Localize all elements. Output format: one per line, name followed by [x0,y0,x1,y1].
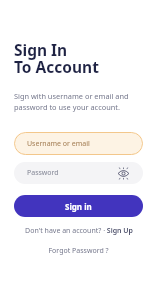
staticText: Sign in [65,201,92,212]
button[interactable]: Password [14,162,143,184]
staticText: Username or email [27,139,90,149]
button[interactable]: Username or email [14,132,143,155]
button[interactable]: Don't have an account? · Sign Up [14,226,143,236]
button[interactable]: Show password [116,166,130,180]
button[interactable]: Sign in [14,195,143,217]
staticText: Don't have an account? · Sign Up [25,226,133,236]
staticText: Password [27,168,59,178]
button[interactable]: Forgot Password ? [14,246,143,256]
staticText: Sign with username or email and password… [14,91,143,112]
staticText: Forgot Password ? [48,246,109,256]
staticText: Sign In To Account [14,39,99,77]
